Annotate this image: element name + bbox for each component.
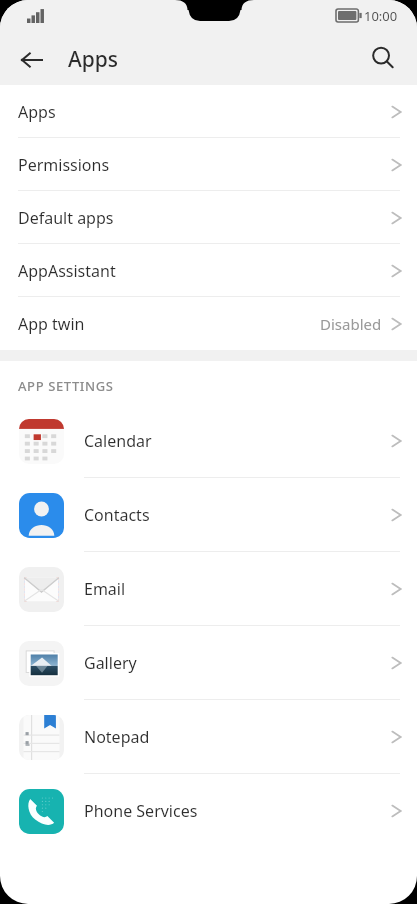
staticText: Contacts — [84, 504, 150, 526]
staticText: Permissions — [18, 154, 110, 176]
staticText: Default apps — [18, 207, 114, 229]
button[interactable]: Calendar — [0, 404, 417, 478]
button[interactable]: Notepad — [0, 700, 417, 774]
staticText: Gallery — [84, 652, 137, 674]
button[interactable]: Search — [359, 34, 407, 82]
staticText: Apps — [18, 101, 56, 123]
staticText: App twin — [18, 313, 85, 335]
staticText: Calendar — [84, 430, 152, 452]
button[interactable]: Gallery — [0, 626, 417, 700]
button[interactable]: Permissions — [0, 138, 417, 191]
button[interactable]: Apps — [0, 85, 417, 138]
staticText: Email — [84, 578, 126, 600]
button[interactable]: Back — [8, 36, 56, 84]
button[interactable]: App twin — [0, 297, 417, 350]
button[interactable]: Email — [0, 552, 417, 626]
staticText: APP SETTINGS — [18, 377, 114, 395]
button[interactable]: AppAssistant — [0, 244, 417, 297]
button[interactable]: Phone Services — [0, 774, 417, 848]
staticText: Phone Services — [84, 800, 198, 822]
staticText: AppAssistant — [18, 260, 116, 282]
staticText: Apps — [68, 45, 119, 74]
staticText: Disabled — [320, 314, 382, 334]
staticText: 10:00 — [364, 7, 398, 25]
button[interactable]: Default apps — [0, 191, 417, 244]
button[interactable]: Contacts — [0, 478, 417, 552]
staticText: Notepad — [84, 726, 150, 748]
